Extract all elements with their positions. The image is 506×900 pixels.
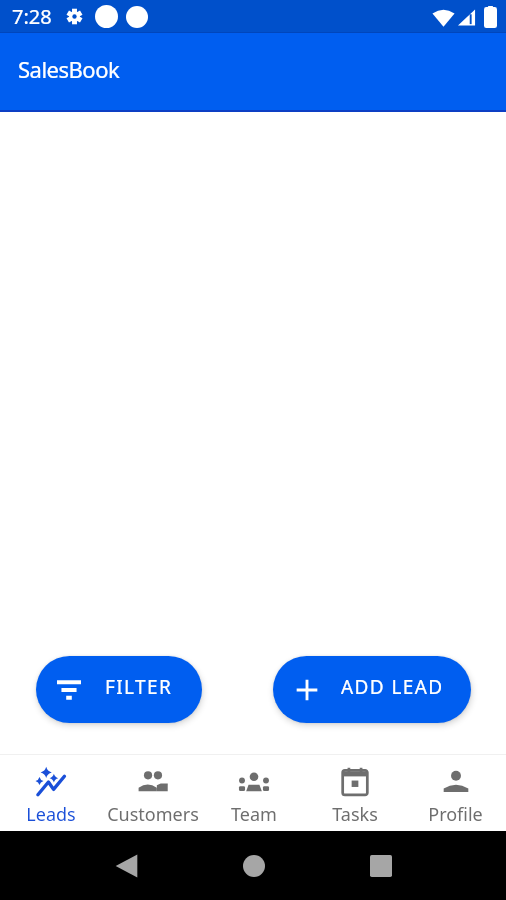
button[interactable]: Recents [317, 831, 444, 900]
button[interactable]: Profile [405, 755, 506, 831]
staticText: 7:28 [12, 3, 52, 30]
button[interactable]: Customers [102, 755, 203, 831]
staticText: FILTER [105, 674, 173, 700]
button[interactable]: ADD LEAD [273, 656, 471, 723]
staticText: Team [231, 802, 277, 827]
button[interactable]: Home [190, 831, 317, 900]
button[interactable]: Leads [0, 755, 102, 831]
staticText: SalesBook [18, 54, 120, 84]
button[interactable]: Back [63, 831, 190, 900]
button[interactable]: Tasks [304, 755, 405, 831]
staticText: Customers [107, 802, 199, 827]
staticText: Leads [26, 802, 76, 827]
staticText: ADD LEAD [341, 674, 444, 700]
staticText: Profile [428, 802, 483, 827]
button[interactable]: Team [203, 755, 304, 831]
staticText: Tasks [332, 802, 378, 827]
button[interactable]: FILTER [36, 656, 202, 723]
